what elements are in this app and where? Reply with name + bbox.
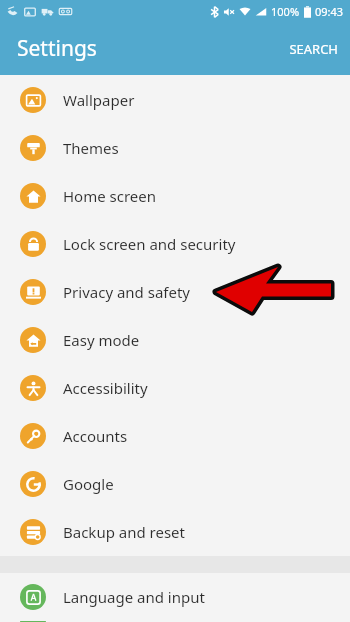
staticText: Lock screen and security xyxy=(63,234,236,254)
staticText: Accounts xyxy=(63,426,128,446)
staticText: 09:43 xyxy=(315,4,344,19)
button[interactable]: Privacy and safety xyxy=(0,268,350,316)
button[interactable]: Home screen xyxy=(0,172,350,220)
button[interactable]: Accessibility xyxy=(0,364,350,412)
staticText: SEARCH xyxy=(289,40,338,58)
staticText: Language and input xyxy=(63,587,205,607)
button[interactable]: Accounts xyxy=(0,412,350,460)
button[interactable]: Next setting xyxy=(0,621,350,622)
staticText: Accessibility xyxy=(63,378,148,398)
staticText: Google xyxy=(63,474,114,494)
staticText: 100% xyxy=(271,4,300,19)
button[interactable]: Easy mode xyxy=(0,316,350,364)
button[interactable]: SEARCH xyxy=(277,30,350,68)
staticText: Home screen xyxy=(63,186,157,206)
staticText: Backup and reset xyxy=(63,522,185,542)
button[interactable]: Language and input xyxy=(0,573,350,621)
staticText: Settings xyxy=(17,34,97,63)
staticText: Themes xyxy=(63,138,119,158)
staticText: Privacy and safety xyxy=(63,282,191,302)
button[interactable]: Wallpaper xyxy=(0,76,350,124)
staticText: Easy mode xyxy=(63,330,140,350)
button[interactable]: Lock screen and security xyxy=(0,220,350,268)
staticText: Wallpaper xyxy=(63,90,135,110)
button[interactable]: Google xyxy=(0,460,350,508)
button[interactable]: Themes xyxy=(0,124,350,172)
button[interactable]: Backup and reset xyxy=(0,508,350,556)
